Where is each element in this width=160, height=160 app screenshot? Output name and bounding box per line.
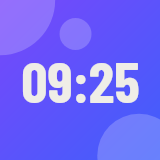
staticText: 09:25 <box>21 45 140 115</box>
